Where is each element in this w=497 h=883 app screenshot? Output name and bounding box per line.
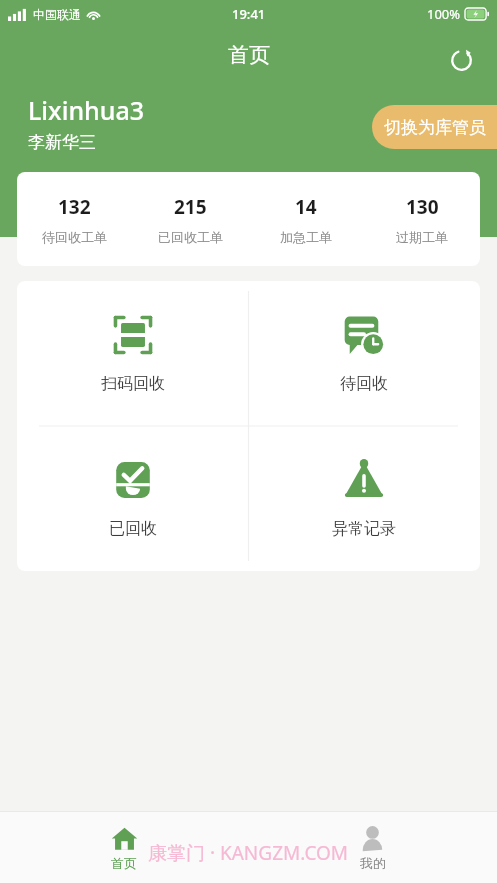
staticText: 132 [58,194,91,220]
staticText: Lixinhua3 [28,93,145,127]
staticText: 扫码回收 [101,374,165,394]
button[interactable]: 已回收 [17,426,248,571]
button[interactable]: 异常记录 [248,426,480,571]
staticText: 首页 [111,855,137,871]
staticText: 首页 [228,42,270,68]
button[interactable]: 待回收 [248,281,480,426]
staticText: 异常记录 [332,519,396,539]
staticText: 我的 [360,855,386,871]
staticText: 待回收工单 [42,229,107,245]
staticText: 100% [427,5,461,23]
staticText: 已回收 [109,519,157,539]
button[interactable]: 扫码回收 [17,281,248,426]
staticText: 李新华三 [28,132,96,153]
button[interactable]: 215 [132,172,248,266]
staticText: 过期工单 [396,229,448,245]
button[interactable]: Refresh [441,40,481,80]
staticText: 14 [295,194,317,220]
staticText: 加急工单 [280,229,332,245]
staticText: 康掌门 · KANGZM.COM [148,840,349,866]
button[interactable]: 132 [17,172,132,266]
staticText: 切换为库管员 [384,117,486,138]
staticText: 中国联通 [33,7,81,22]
button[interactable]: 我的 [248,812,497,883]
staticText: 215 [174,194,207,220]
button[interactable]: 14 [248,172,364,266]
staticText: 待回收 [340,374,388,394]
button[interactable]: 130 [364,172,480,266]
staticText: 130 [406,194,439,220]
staticText: 19:41 [232,5,266,23]
button[interactable]: 切换为库管员 [372,105,497,149]
staticText: 已回收工单 [158,229,223,245]
button[interactable]: 首页 [0,812,248,883]
